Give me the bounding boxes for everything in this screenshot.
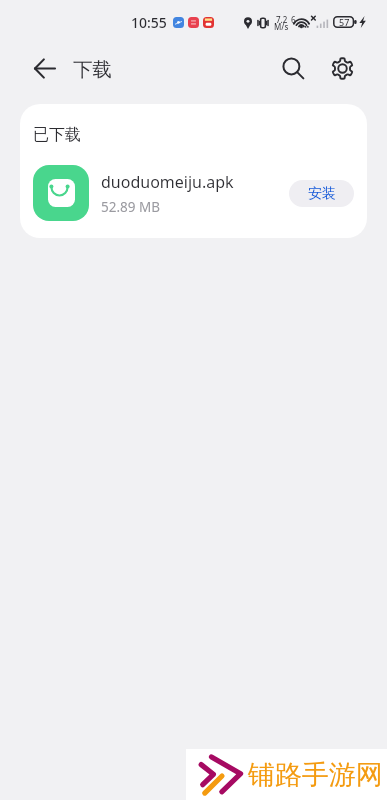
staticText: duoduomeiju.apk — [101, 171, 234, 193]
staticText: 下载 — [73, 57, 112, 82]
button[interactable]: Back — [34, 58, 64, 79]
staticText: 已下载 — [33, 125, 81, 145]
staticText: 7.2 — [276, 14, 288, 25]
staticText: 52.89 MB — [101, 198, 161, 216]
staticText: 铺路手游网 — [248, 758, 383, 792]
button[interactable]: Settings — [322, 48, 363, 89]
button[interactable]: 安装 — [289, 180, 354, 207]
staticText: M/s — [274, 21, 289, 32]
staticText: 6 — [291, 14, 296, 25]
staticText: 10:55 — [131, 13, 167, 32]
staticText: 57 — [339, 16, 350, 28]
staticText: 安装 — [308, 185, 336, 203]
button[interactable]: Search — [273, 48, 313, 88]
